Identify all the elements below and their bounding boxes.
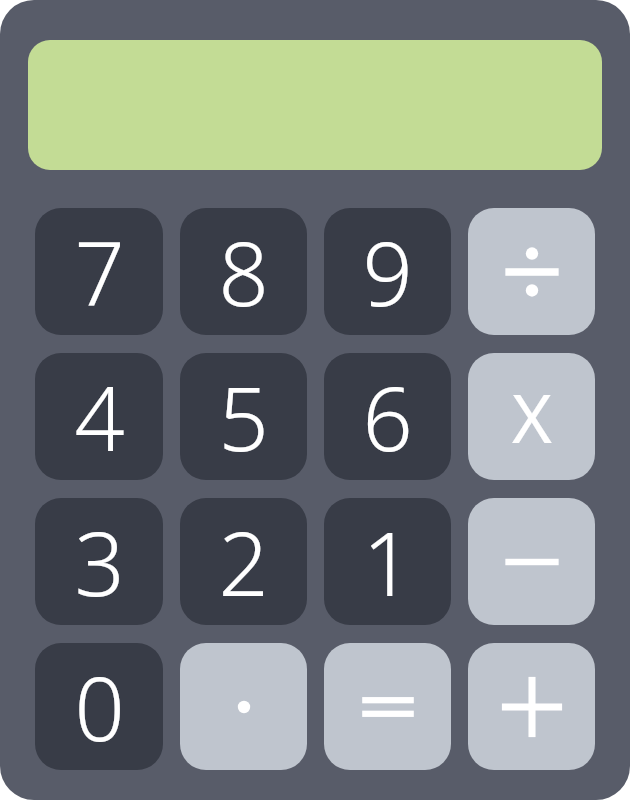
staticText: 9: [362, 212, 413, 332]
staticText: 4: [74, 357, 125, 477]
staticText: 8: [218, 212, 269, 332]
staticText: 0: [74, 647, 125, 767]
button[interactable]: Display: [28, 40, 602, 170]
button[interactable]: 3: [35, 498, 163, 625]
button[interactable]: 5: [180, 353, 307, 480]
staticText: 3: [74, 502, 125, 622]
button[interactable]: Minus: [468, 498, 595, 625]
button[interactable]: 9: [324, 208, 451, 335]
button[interactable]: Equals: [324, 643, 451, 770]
button[interactable]: Divide: [468, 208, 595, 335]
button[interactable]: Plus: [468, 643, 595, 770]
staticText: 6: [362, 357, 413, 477]
button[interactable]: 2: [180, 498, 307, 625]
button[interactable]: 4: [35, 353, 163, 480]
button[interactable]: 8: [180, 208, 307, 335]
button[interactable]: Multiply: [468, 353, 595, 480]
button[interactable]: 0: [35, 643, 163, 770]
button[interactable]: 7: [35, 208, 163, 335]
staticText: X: [512, 370, 552, 463]
button[interactable]: 6: [324, 353, 451, 480]
staticText: 7: [74, 212, 125, 332]
staticText: 1: [362, 502, 413, 622]
button[interactable]: Decimal point: [180, 643, 307, 770]
staticText: 2: [218, 502, 269, 622]
staticText: 5: [218, 357, 269, 477]
button[interactable]: 1: [324, 498, 451, 625]
